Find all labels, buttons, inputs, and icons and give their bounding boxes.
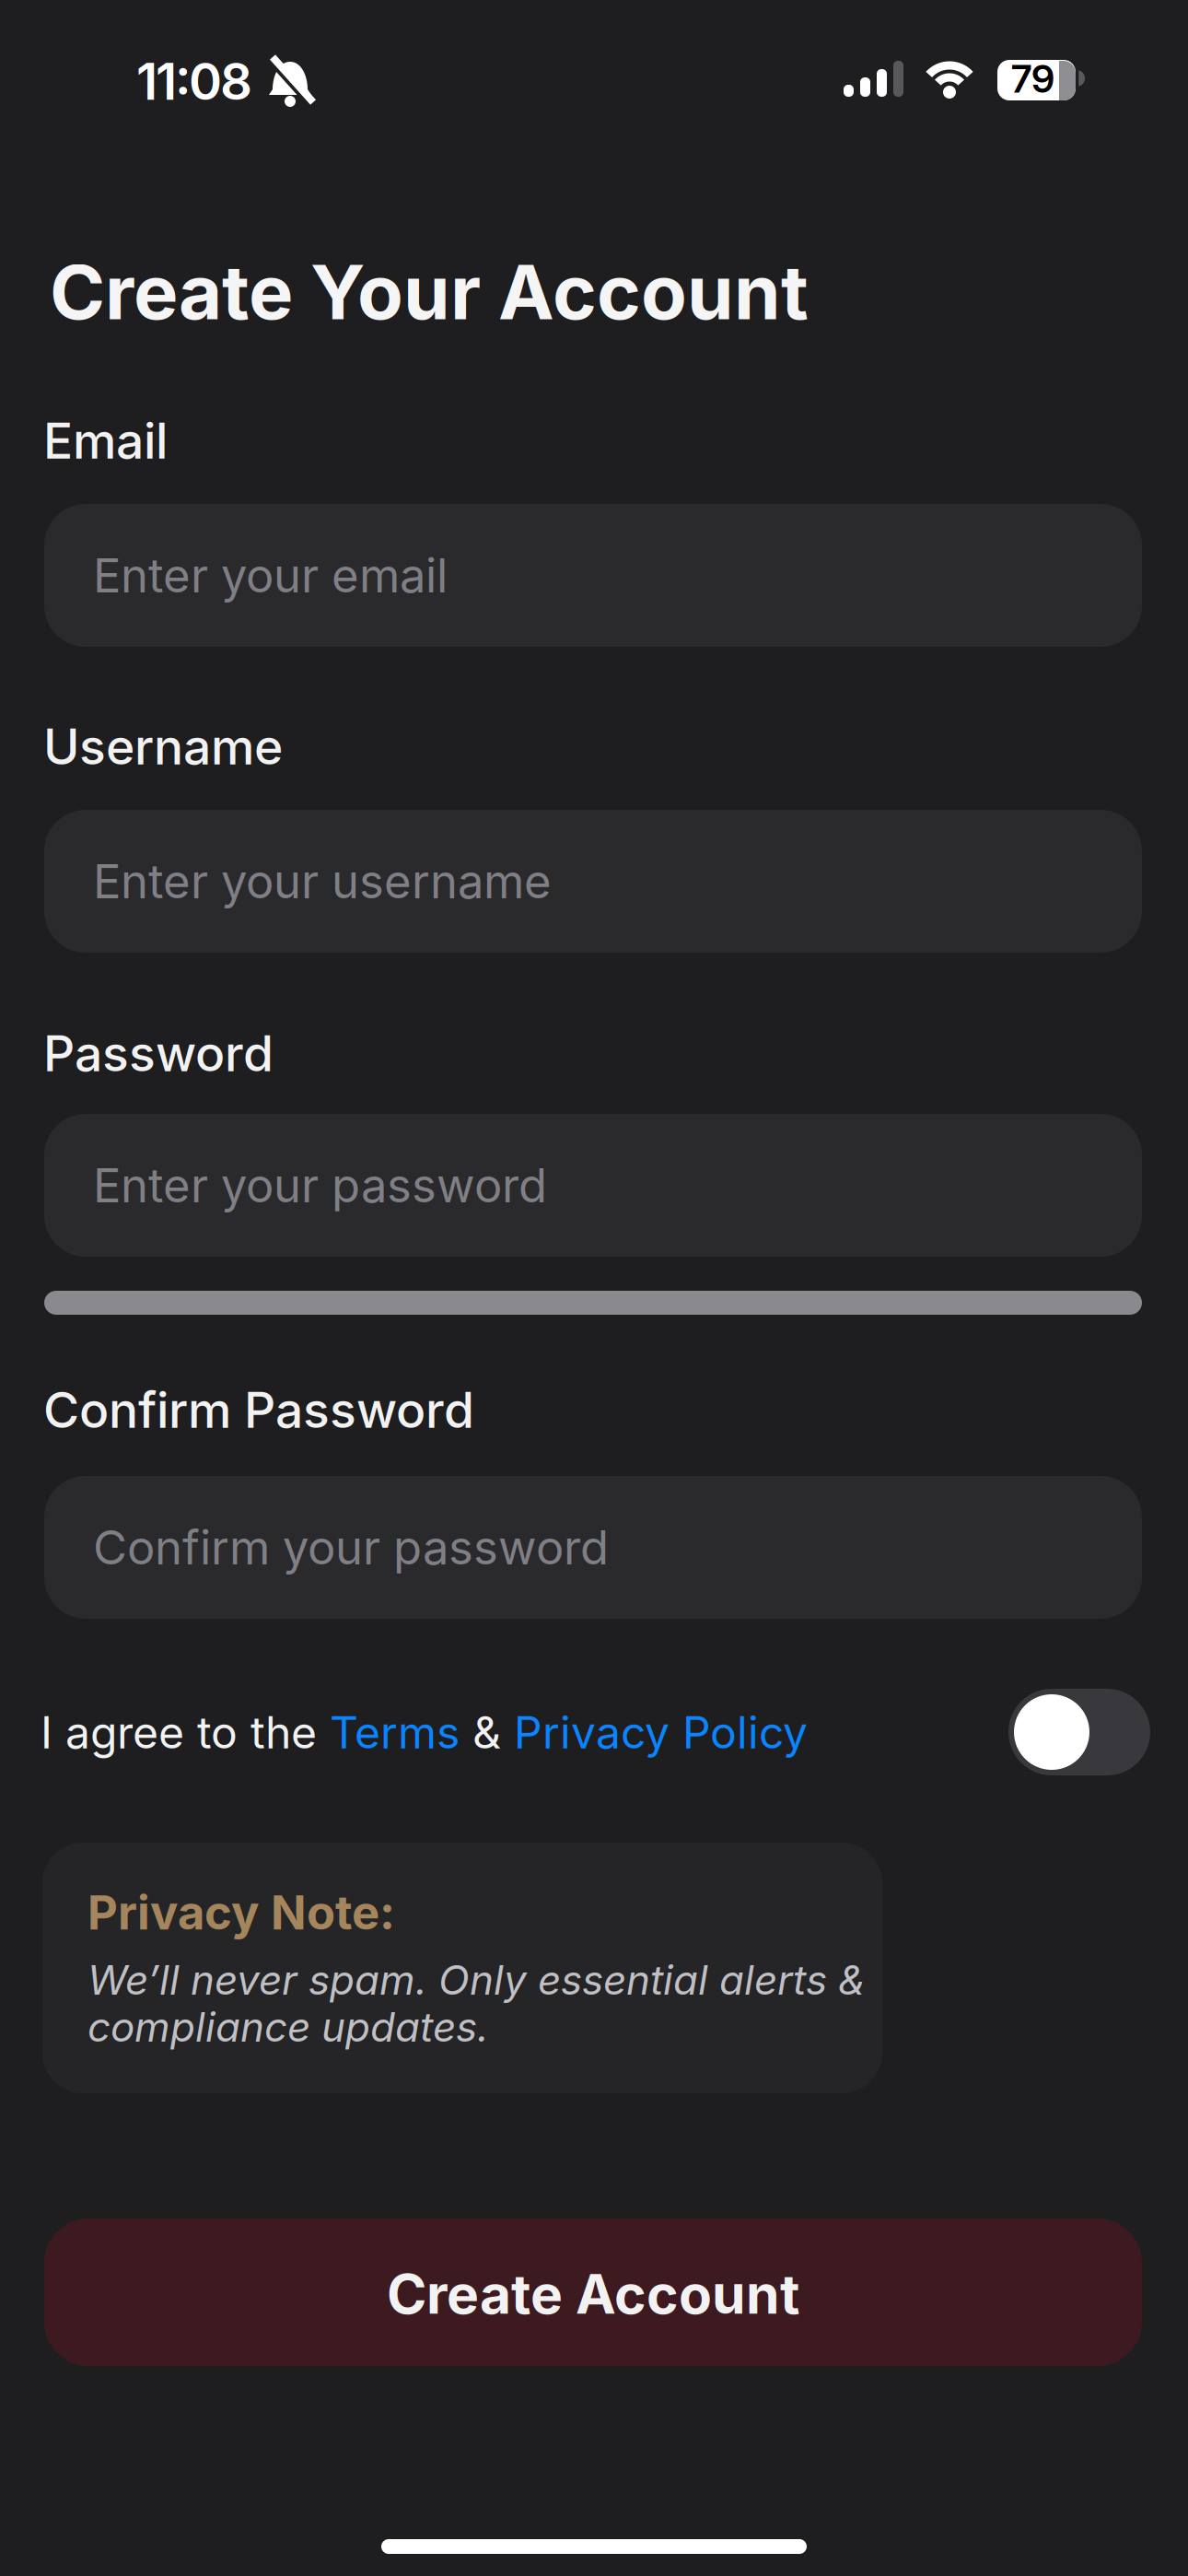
staticText: Privacy Note: [87,1885,395,1940]
staticText: Create Account [387,2262,799,2326]
button[interactable]: Terms [330,1706,460,1758]
staticText: I agree to the [41,1706,330,1758]
staticText: Enter your email [93,548,448,603]
staticText: Confirm your password [93,1520,609,1575]
staticText: Confirm Password [43,1381,474,1439]
staticText: We’ll never spam. Only essential alerts … [87,1956,866,2004]
staticText: compliance updates. [87,2003,489,2051]
staticText: Enter your password [93,1158,547,1213]
staticText: Username [43,718,283,776]
staticText: Enter your username [93,854,552,909]
button[interactable]: Create Account [44,2219,1142,2366]
staticText: Privacy Policy [514,1706,808,1758]
button[interactable]: Enter your password [44,1114,1142,1257]
staticText: 11:08 [136,52,252,111]
staticText: Create Your Account [50,248,809,336]
staticText: Terms [330,1706,460,1758]
staticText: Email [43,412,168,470]
button[interactable]: Enter your email [44,504,1142,647]
staticText: & [460,1706,514,1758]
staticText: Password [43,1025,274,1082]
staticText: 79 [1011,56,1054,101]
button[interactable]: Privacy Policy [514,1706,808,1758]
button[interactable]: I agree to the Terms & Privacy Policy [1008,1689,1150,1775]
button[interactable]: Confirm your password [44,1476,1142,1619]
button[interactable]: Enter your username [44,810,1142,953]
